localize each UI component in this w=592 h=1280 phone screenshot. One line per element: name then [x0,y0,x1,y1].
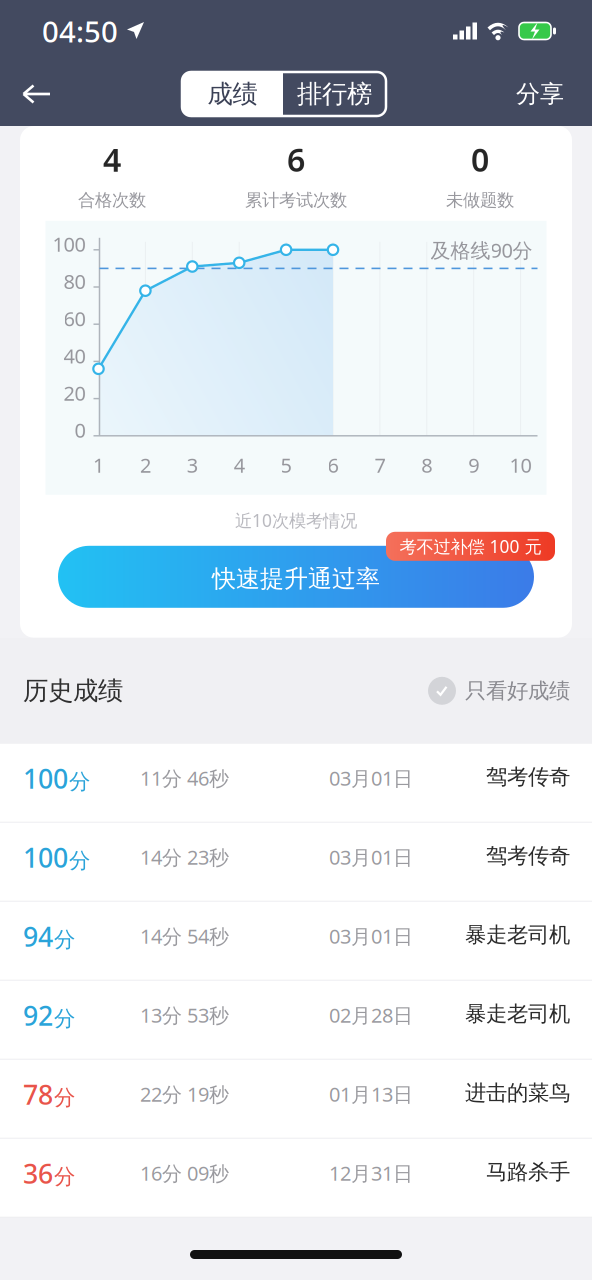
staticText: 驾考传奇 [486,843,570,869]
button[interactable]: 排行榜 [283,72,386,116]
staticText: 12月31日 [329,1160,413,1186]
staticText: 排行榜 [297,78,372,109]
button[interactable]: 成绩 [182,72,283,116]
staticText: 分 [54,1164,75,1190]
staticText: 100 [23,840,68,875]
staticText: 13分 53秒 [140,1002,229,1028]
staticText: 累计考试次数 [245,189,347,211]
staticText: 10 [510,452,532,478]
staticText: 暴走老司机 [465,922,570,948]
button[interactable]: 快速提升通过率 [58,532,534,608]
staticText: 暴走老司机 [465,1001,570,1027]
staticText: 03月01日 [329,844,413,870]
staticText: 14分 54秒 [140,923,229,949]
button[interactable]: 只看好成绩 [428,677,570,705]
staticText: 3 [187,452,198,478]
staticText: 只看好成绩 [465,678,570,704]
staticText: 1 [93,452,104,478]
staticText: 未做题数 [446,189,514,211]
button[interactable]: 94 [0,902,592,980]
staticText: 7 [374,452,385,478]
staticText: 0 [74,417,85,443]
staticText: 100 [23,761,68,796]
staticText: 14分 23秒 [140,844,229,870]
staticText: 4 [103,138,121,180]
staticText: 马路杀手 [486,1159,570,1185]
staticText: 03月01日 [329,923,413,949]
staticText: 100 [52,231,85,257]
staticText: 11分 46秒 [140,765,229,791]
staticText: 2 [140,452,151,478]
staticText: 进击的菜鸟 [465,1080,570,1106]
button[interactable]: 36 [0,1139,592,1217]
staticText: 分 [69,848,90,874]
staticText: 6 [327,452,338,478]
staticText: 及格线90分 [430,237,532,263]
staticText: 近10次模考情况 [235,509,357,532]
staticText: 92 [23,998,53,1033]
staticText: 分 [54,927,75,953]
staticText: 考不过补偿 100 元 [399,535,541,558]
button[interactable]: 100 [0,823,592,901]
staticText: 40 [63,342,85,369]
staticText: 分 [54,1006,75,1032]
staticText: 快速提升通过率 [212,564,380,594]
staticText: 4 [234,452,245,478]
staticText: 16分 09秒 [140,1160,229,1186]
staticText: 历史成绩 [23,675,123,706]
staticText: 6 [287,138,305,180]
staticText: 03月01日 [329,765,413,791]
staticText: 合格次数 [78,189,146,211]
staticText: 94 [23,919,53,954]
staticText: 04:50 [42,11,118,50]
staticText: 22分 19秒 [140,1081,229,1107]
staticText: 0 [471,138,489,180]
staticText: 分 [69,769,90,795]
staticText: 36 [23,1156,53,1191]
staticText: 8 [421,452,432,478]
staticText: 02月28日 [329,1002,413,1028]
button[interactable]: 100 [0,744,592,822]
staticText: 成绩 [207,78,257,109]
staticText: 5 [281,452,292,478]
staticText: 60 [63,305,85,332]
staticText: 78 [23,1077,53,1112]
staticText: 分 [54,1085,75,1111]
button[interactable]: 78 [0,1060,592,1138]
staticText: 分享 [516,79,564,109]
button[interactable]: 92 [0,981,592,1059]
staticText: 驾考传奇 [486,764,570,790]
staticText: 80 [63,268,85,295]
button[interactable]: Back [0,72,52,116]
staticText: 9 [468,452,479,478]
staticText: 20 [63,380,85,406]
button[interactable]: 分享 [516,68,592,120]
staticText: 01月13日 [329,1081,413,1107]
